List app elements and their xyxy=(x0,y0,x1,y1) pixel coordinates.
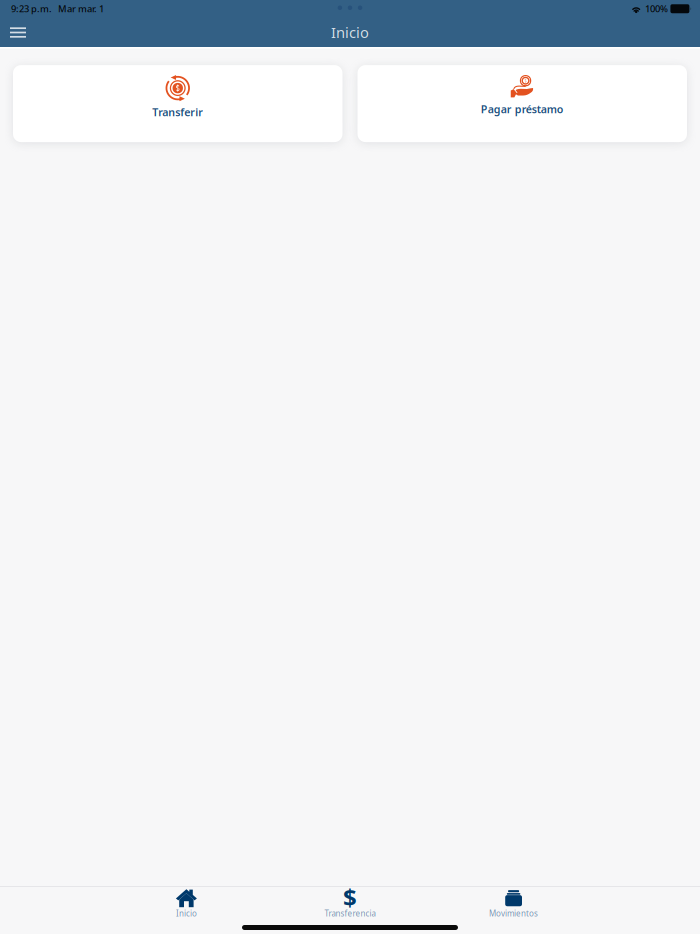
staticText: Pagar préstamo xyxy=(481,102,564,116)
staticText: $ xyxy=(343,881,357,913)
button[interactable]: Pagar préstamo xyxy=(357,65,687,142)
staticText: Transferir xyxy=(152,105,203,119)
staticText: 9:23 p.m. xyxy=(11,3,52,15)
button[interactable]: $ xyxy=(268,888,432,920)
staticText: Transferencia xyxy=(324,908,375,919)
button[interactable]: Inicio xyxy=(105,888,268,920)
button[interactable]: Menu xyxy=(0,19,38,46)
staticText: 100% xyxy=(645,3,668,15)
button[interactable]: Transferir xyxy=(13,65,342,142)
staticText: Inicio xyxy=(331,22,369,42)
staticText: Inicio xyxy=(176,908,197,919)
button[interactable]: Movimientos xyxy=(432,888,595,920)
staticText: Movimientos xyxy=(489,908,538,919)
staticText: Mar mar. 1 xyxy=(52,3,104,15)
